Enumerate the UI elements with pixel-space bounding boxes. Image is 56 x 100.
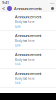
button[interactable]: < (2, 5, 5, 12)
staticText: Announcements (14, 6, 42, 11)
staticText: Announcement (15, 33, 41, 38)
staticText: Announcement (15, 14, 41, 19)
button[interactable]: Delete (51, 7, 54, 10)
staticText: Body text here (15, 39, 35, 43)
staticText: .... (50, 0, 54, 5)
staticText: Body text here (15, 58, 35, 62)
staticText: Link (15, 44, 20, 47)
staticText: < (2, 5, 5, 12)
staticText: 9:41 (2, 0, 9, 5)
staticText: Announcement (15, 52, 41, 57)
staticText: Link (15, 63, 20, 66)
staticText: Link (15, 81, 20, 85)
staticText: Body text here (15, 77, 35, 80)
staticText: Announcement (15, 71, 41, 76)
staticText: Link (15, 25, 20, 28)
staticText: Body text here (15, 20, 35, 24)
